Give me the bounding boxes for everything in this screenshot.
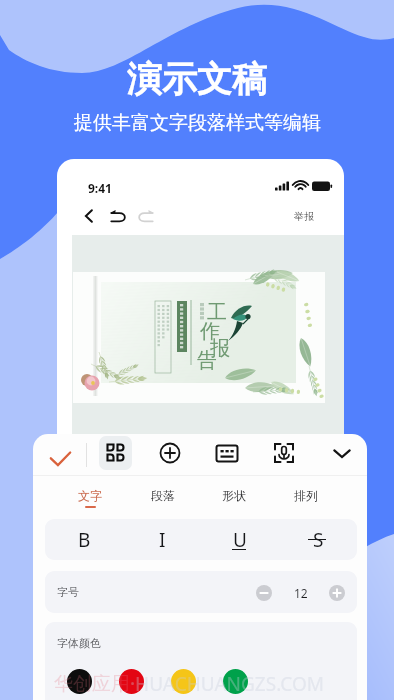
button[interactable]: Color 4 [223,669,248,694]
button[interactable]: Undo [106,204,130,228]
staticText: ·HUACHUANGZS.COM [130,671,324,697]
staticText: B [78,527,91,553]
staticText: 华创应用 [54,672,130,696]
button[interactable]: Voice input [268,437,300,469]
staticText: U [233,527,247,553]
staticText: 文字 [78,488,102,503]
button[interactable]: Back [77,204,101,228]
button[interactable]: Color 1 [67,669,92,694]
staticText: 工 [207,300,227,325]
button[interactable]: Color 3 [171,669,196,694]
staticText: 12 [294,585,308,601]
button[interactable]: Decrease font size [256,585,272,601]
button[interactable]: 段落 [133,478,193,510]
staticText: 提供丰富文字段落样式等编辑 [74,111,321,135]
button[interactable]: 文字 [60,478,120,510]
button[interactable]: Redo [134,204,158,228]
staticText: 段落 [151,488,175,503]
staticText: S [313,527,324,553]
staticText: 作 [200,319,220,344]
button[interactable]: Style [99,436,132,470]
button[interactable]: Increase font size [329,585,345,601]
button[interactable]: Keyboard [211,437,243,469]
button[interactable]: S [279,519,357,560]
button[interactable]: Add [154,437,186,469]
staticText: 形状 [222,488,246,503]
button[interactable]: 举报 [294,210,314,223]
staticText: 举报 [294,210,314,223]
button[interactable]: 排列 [276,478,336,510]
staticText: 演示文稿 [127,57,267,101]
staticText: 9:41 [88,180,112,196]
button[interactable]: 形状 [204,478,264,510]
button[interactable]: Collapse [326,437,358,469]
button[interactable]: I [123,519,201,560]
button[interactable]: B [45,519,123,560]
button[interactable]: Color 2 [119,669,144,694]
staticText: 字号 [57,585,79,599]
staticText: 字体颜色 [57,636,101,650]
button[interactable]: U [201,519,279,560]
button[interactable]: Confirm [43,442,77,476]
staticText: 告 [197,348,217,373]
staticText: 报 [210,336,230,361]
staticText: 排列 [294,488,318,503]
staticText: I [159,527,166,553]
